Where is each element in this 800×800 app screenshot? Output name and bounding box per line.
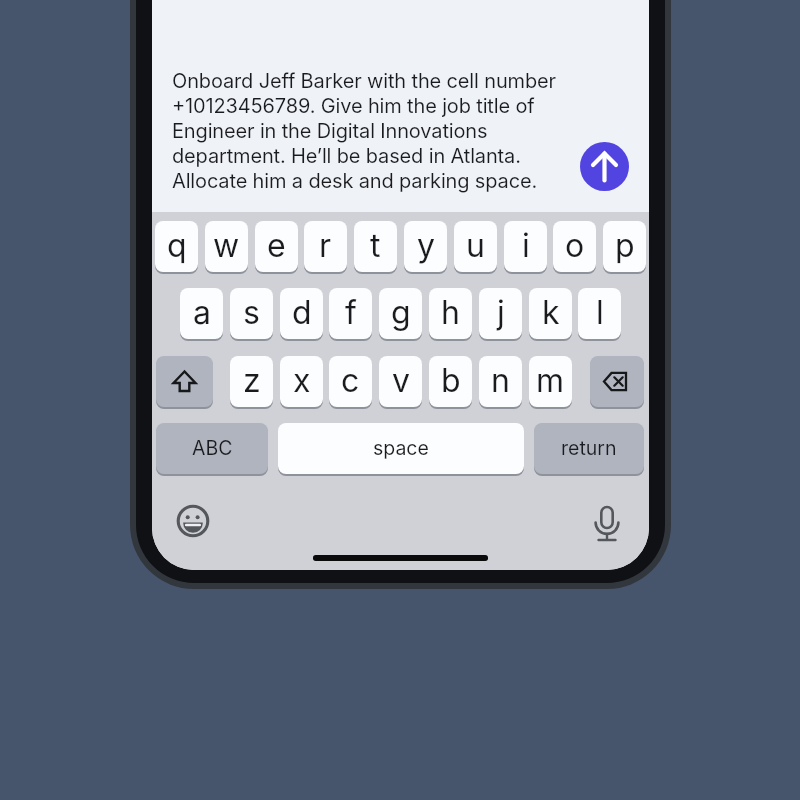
staticText: Onboard Jeff Barker with the cell number… [172,69,556,193]
staticText: w [213,226,240,265]
staticText: t [370,226,381,265]
button[interactable]: return [534,423,644,474]
staticText: k [542,293,560,332]
staticText: r [319,226,332,265]
staticText: u [466,226,485,265]
button[interactable]: d [280,288,323,339]
staticText: e [267,226,286,265]
staticText: j [497,293,505,332]
staticText: m [536,361,565,400]
button[interactable]: n [479,356,522,407]
button[interactable]: z [230,356,273,407]
staticText: c [341,361,360,400]
staticText: b [441,361,461,400]
button[interactable]: x [280,356,323,407]
staticText: l [596,293,604,332]
button[interactable] [156,356,213,407]
button[interactable]: o [553,221,596,272]
staticText: o [565,226,585,265]
staticText: g [391,293,411,332]
staticText: d [292,293,312,332]
button[interactable]: h [429,288,472,339]
staticText: z [243,361,261,400]
button[interactable]: b [429,356,472,407]
button[interactable]: p [603,221,646,272]
staticText: h [441,293,460,332]
button[interactable]: q [155,221,198,272]
button[interactable]: v [379,356,422,407]
button[interactable] [176,504,210,538]
button[interactable]: s [230,288,273,339]
button[interactable]: l [578,288,621,339]
staticText: y [417,226,435,265]
button[interactable]: k [529,288,572,339]
staticText: f [345,293,357,332]
staticText: s [243,293,260,332]
button[interactable]: r [304,221,347,272]
button[interactable]: y [404,221,447,272]
staticText: v [392,361,410,400]
button[interactable]: g [379,288,422,339]
button[interactable]: e [255,221,298,272]
button[interactable] [580,142,629,191]
button[interactable]: c [329,356,372,407]
button[interactable]: i [504,221,547,272]
staticText: ABC [192,436,233,460]
staticText: p [615,226,635,265]
staticText: i [522,226,530,265]
staticText: n [491,361,510,400]
button[interactable]: j [479,288,522,339]
button[interactable]: w [205,221,248,272]
button[interactable]: a [180,288,223,339]
staticText: return [561,436,617,460]
button[interactable]: space [278,423,524,474]
button[interactable]: u [454,221,497,272]
button[interactable]: f [329,288,372,339]
button[interactable] [590,356,644,407]
staticText: q [167,226,187,265]
button[interactable]: ABC [156,423,268,474]
button[interactable]: m [529,356,572,407]
staticText: space [373,436,429,460]
staticText: a [193,293,211,332]
button[interactable] [590,504,624,538]
staticText: x [293,361,311,400]
button[interactable]: t [354,221,397,272]
